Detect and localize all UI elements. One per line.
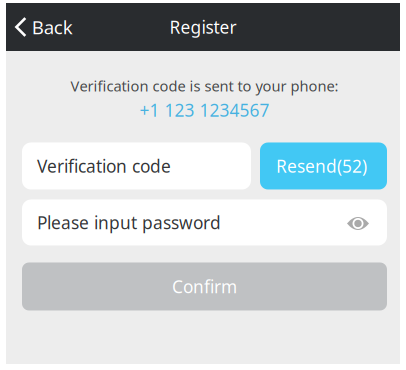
button[interactable]: Confirm	[22, 262, 387, 310]
staticText: Confirm	[172, 275, 237, 298]
staticText: Verification code is sent to your phone:	[70, 76, 338, 95]
staticText: Resend(52)	[276, 154, 367, 177]
button[interactable]: Verification code	[22, 142, 251, 189]
staticText: Back	[32, 15, 73, 39]
staticText: Verification code	[37, 154, 171, 177]
button[interactable]: +1 123 1234567	[139, 95, 269, 121]
button[interactable]: Resend(52)	[260, 142, 387, 189]
staticText: Please input password	[37, 211, 221, 234]
button[interactable]: Back	[6, 6, 83, 48]
staticText: Register	[169, 15, 236, 38]
button[interactable]: Show password	[337, 199, 387, 245]
staticText: +1 123 1234567	[139, 98, 269, 121]
button[interactable]: Please input password	[22, 199, 337, 245]
